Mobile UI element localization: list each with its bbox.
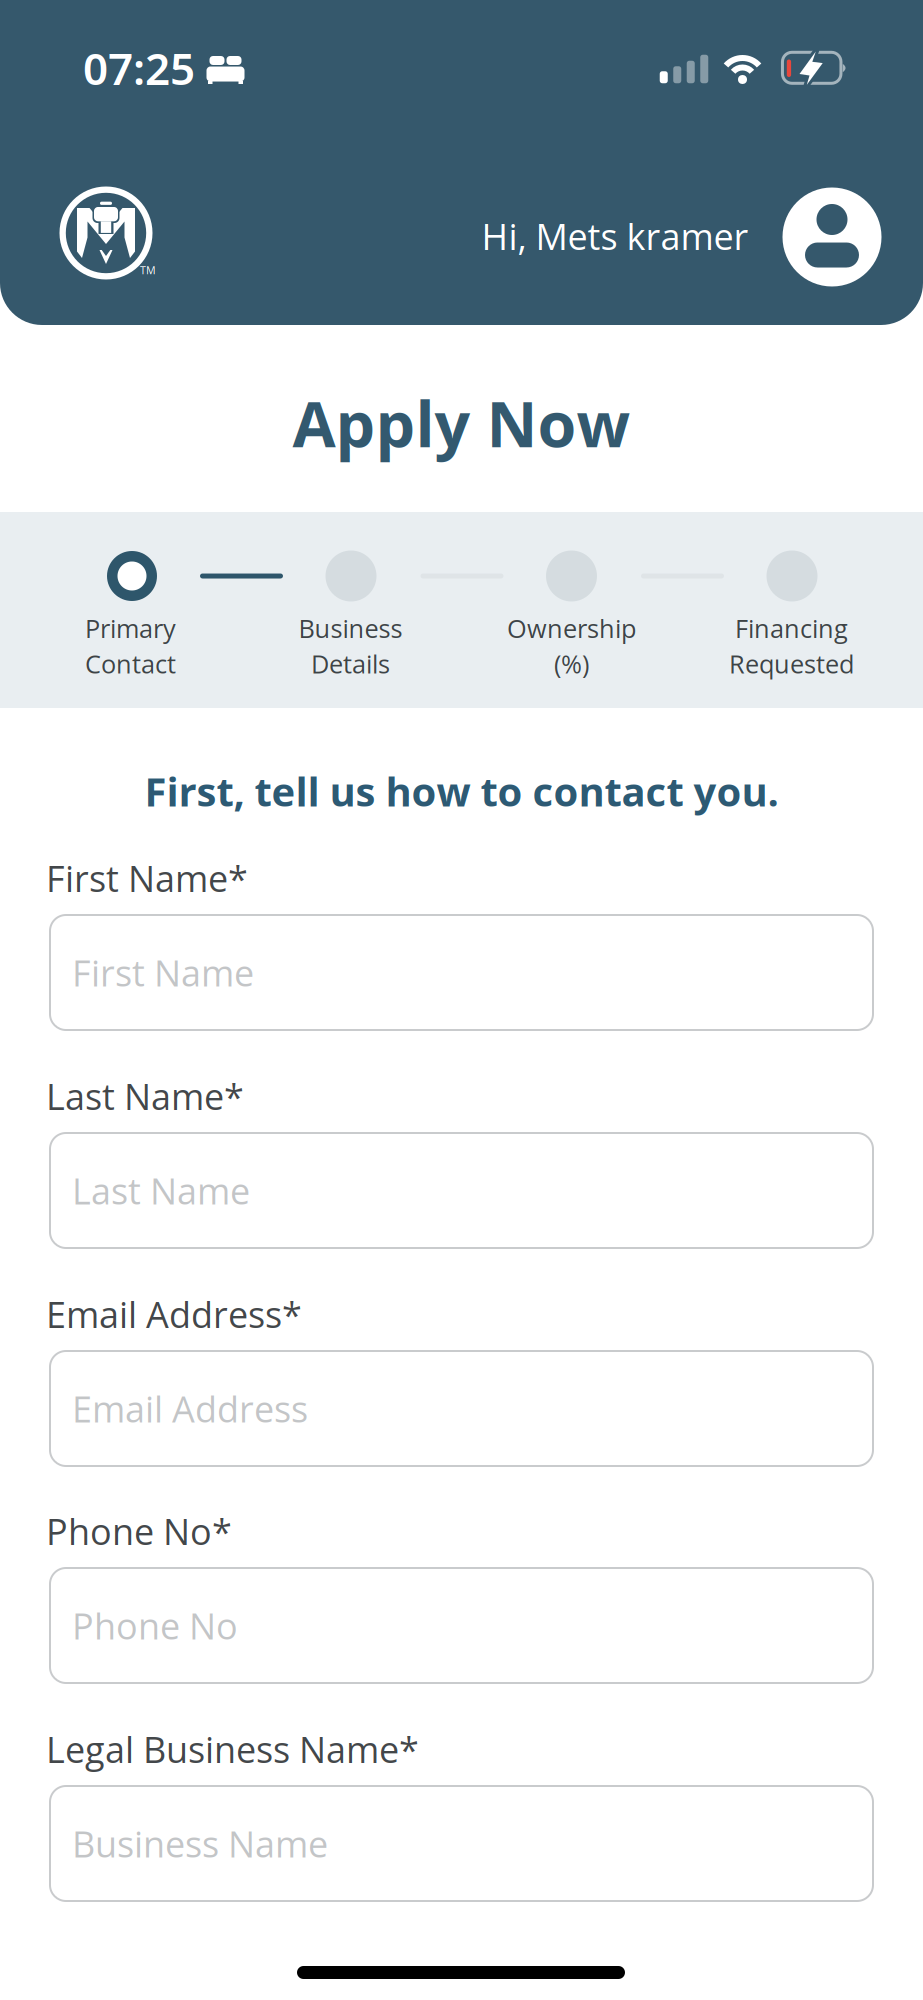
button[interactable]: First Name [50, 915, 873, 1030]
staticText: Requested [729, 646, 854, 681]
staticText: Business Name [72, 1819, 328, 1868]
staticText: Phone No [72, 1601, 238, 1650]
staticText: Last Name [72, 1166, 250, 1215]
staticText: Contact [85, 646, 176, 681]
staticText: Legal Business Name* [46, 1724, 419, 1773]
staticText: Email Address* [46, 1289, 302, 1338]
staticText: 07:25 [83, 39, 195, 97]
staticText: First Name* [46, 853, 248, 902]
button[interactable]: Phone No [50, 1568, 873, 1683]
staticText: Apply Now [292, 380, 630, 466]
staticText: (%) [554, 646, 589, 681]
button[interactable]: Last Name [50, 1133, 873, 1248]
staticText: Hi, Mets kramer [481, 211, 748, 260]
staticText: Details [311, 646, 390, 681]
button[interactable]: Legal Business Name [50, 1786, 873, 1901]
staticText: Last Name* [46, 1071, 244, 1120]
button[interactable]: Profile [782, 187, 881, 286]
staticText: First Name [72, 948, 254, 997]
button[interactable]: Email Address [50, 1351, 873, 1466]
staticText: Phone No* [46, 1506, 232, 1555]
staticText: Primary [85, 611, 176, 645]
staticText: Email Address [72, 1384, 308, 1433]
staticText: Financing [735, 611, 848, 645]
staticText: Business [298, 611, 402, 645]
staticText: TM [140, 263, 156, 277]
staticText: First, tell us how to contact you. [144, 764, 778, 818]
staticText: Ownership [507, 611, 636, 645]
